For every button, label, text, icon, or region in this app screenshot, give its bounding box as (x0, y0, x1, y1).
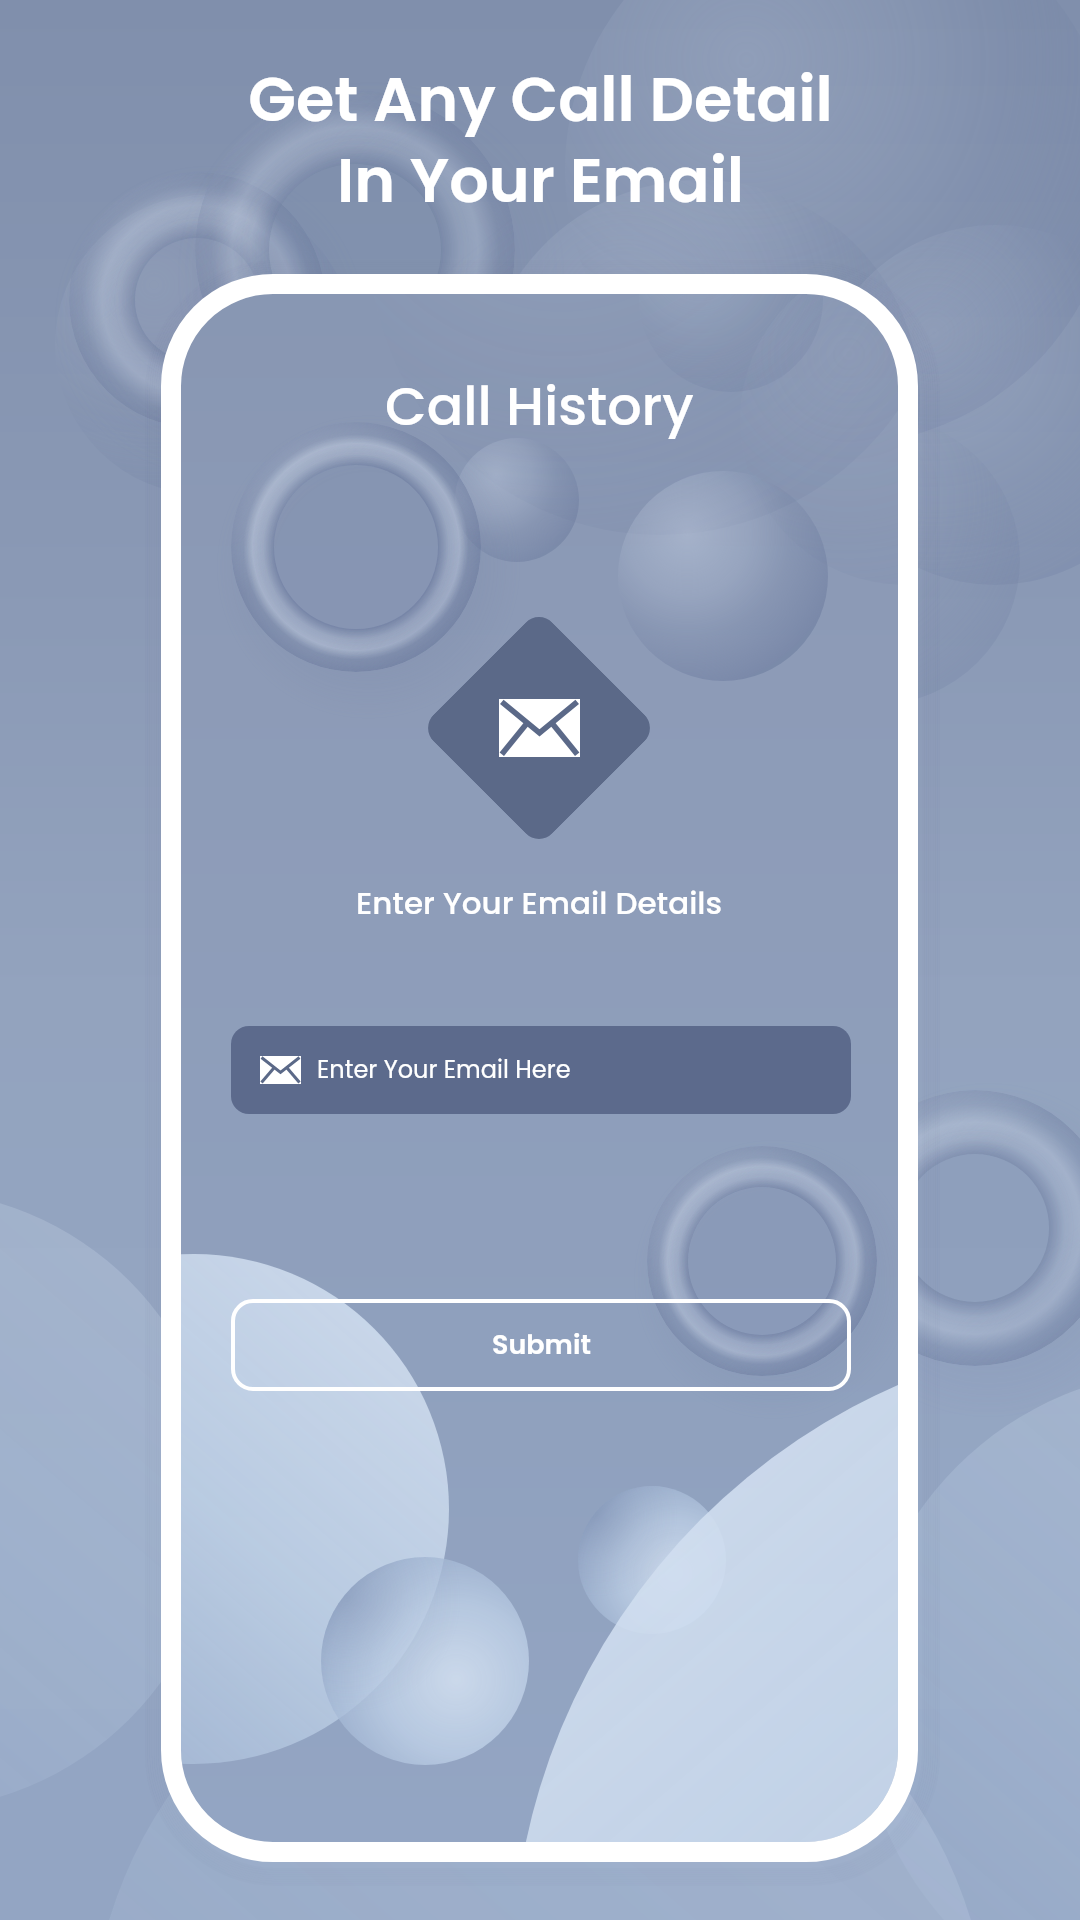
staticText: Enter Your Email Details (356, 881, 723, 924)
button[interactable]: Enter Your Email Here (231, 1026, 851, 1114)
button[interactable]: Submit (231, 1299, 851, 1391)
staticText: Enter Your Email Here (317, 1053, 571, 1087)
other: Email (499, 699, 580, 757)
staticText: Call History (385, 368, 694, 444)
staticText: Submit (492, 1326, 591, 1364)
staticText: Get Any Call Detail In Your Email (248, 56, 833, 224)
